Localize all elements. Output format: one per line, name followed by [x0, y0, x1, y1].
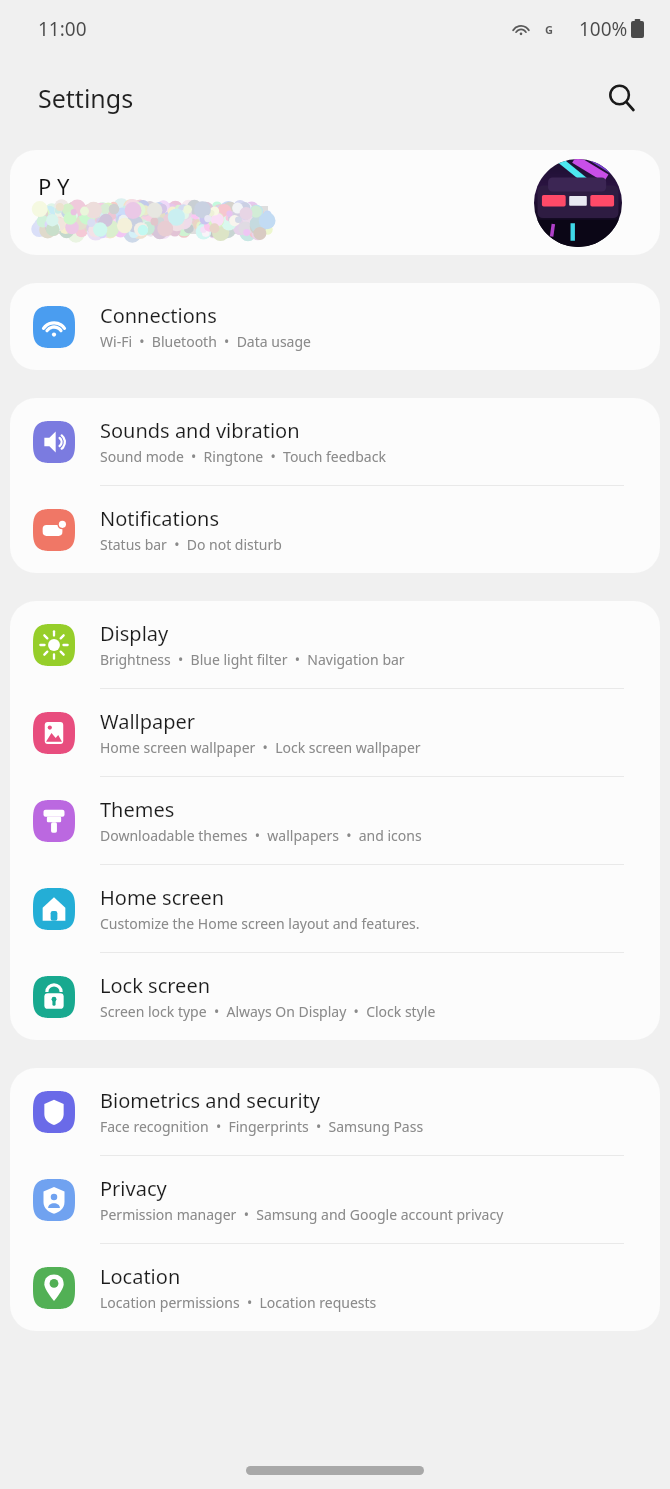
button[interactable]: Home screen	[10, 865, 660, 953]
staticText: Face recognition • Fingerprints • Samsun…	[100, 1117, 424, 1136]
staticText: Location permissions • Location requests	[100, 1293, 377, 1312]
staticText: Display	[100, 620, 169, 647]
staticText: Screen lock type • Always On Display • C…	[100, 1002, 436, 1021]
staticText: Notifications	[100, 505, 219, 532]
staticText: 100%	[579, 16, 628, 42]
staticText: Brightness • Blue light filter • Navigat…	[100, 650, 405, 669]
button[interactable]: Connections	[10, 283, 660, 370]
staticText: Connections	[100, 302, 217, 329]
staticText: 11:00	[38, 16, 87, 42]
button[interactable]: Notifications	[10, 486, 660, 573]
staticText: Settings	[38, 81, 134, 115]
staticText: G	[545, 22, 553, 37]
button[interactable]: Sounds and vibration	[10, 398, 660, 486]
button[interactable]: Biometrics and security	[10, 1068, 660, 1156]
staticText: Home screen	[100, 884, 225, 911]
button[interactable]: Location	[10, 1244, 660, 1331]
staticText: Wallpaper	[100, 708, 196, 735]
staticText: Themes	[100, 796, 175, 823]
staticText: Location	[100, 1263, 181, 1290]
staticText: Home screen wallpaper • Lock screen wall…	[100, 738, 421, 757]
button[interactable]: Lock screen	[10, 953, 660, 1040]
staticText: Sound mode • Ringtone • Touch feedback	[100, 447, 386, 466]
button[interactable]: Wallpaper	[10, 689, 660, 777]
staticText: Sounds and vibration	[100, 417, 300, 444]
staticText: P Y	[38, 171, 70, 201]
staticText: Biometrics and security	[100, 1087, 320, 1114]
staticText: Downloadable themes • wallpapers • and i…	[100, 826, 422, 845]
staticText: Permission manager • Samsung and Google …	[100, 1205, 504, 1224]
button[interactable]: Search	[596, 72, 648, 124]
staticText: Lock screen	[100, 972, 211, 999]
button[interactable]: P Y	[10, 150, 660, 255]
staticText: Privacy	[100, 1175, 167, 1202]
staticText: Status bar • Do not disturb	[100, 535, 282, 554]
staticText: Customize the Home screen layout and fea…	[100, 914, 420, 933]
staticText: Wi-Fi • Bluetooth • Data usage	[100, 332, 311, 351]
button[interactable]: Display	[10, 601, 660, 689]
button[interactable]: Privacy	[10, 1156, 660, 1244]
button[interactable]: Themes	[10, 777, 660, 865]
